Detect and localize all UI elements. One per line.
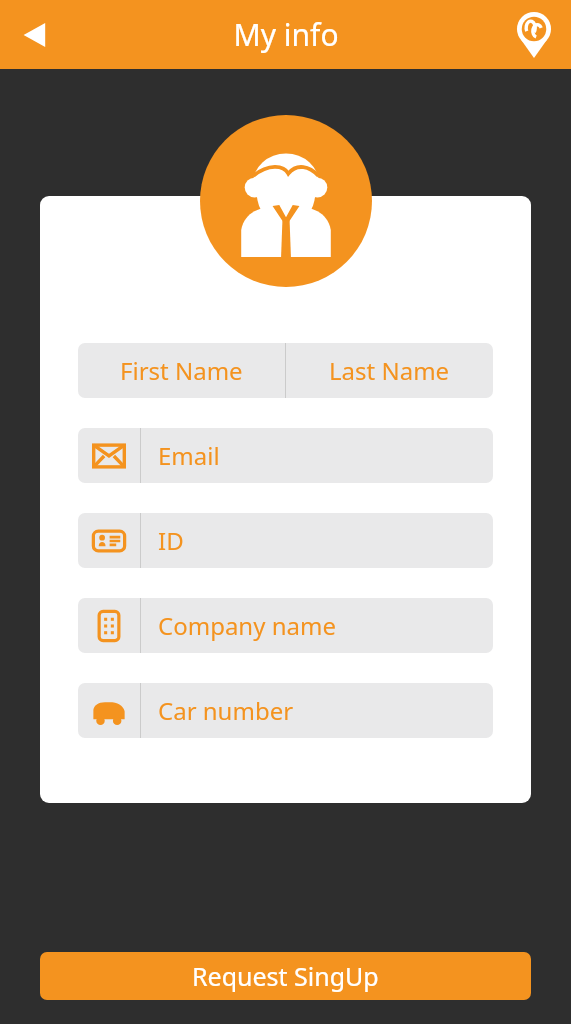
button[interactable]: Profile photo <box>200 115 372 287</box>
staticText: My info <box>233 14 339 55</box>
button[interactable]: Location <box>505 6 563 64</box>
staticText: Request SingUp <box>192 959 379 993</box>
button[interactable]: Car number <box>78 683 493 738</box>
button[interactable]: Company name <box>78 598 493 653</box>
staticText: Email <box>158 439 220 472</box>
staticText: Last Name <box>329 354 450 387</box>
staticText: First Name <box>120 354 243 387</box>
staticText: Company name <box>158 609 336 642</box>
staticText: ID <box>158 524 184 557</box>
button[interactable]: Email <box>78 428 493 483</box>
button[interactable]: Back <box>6 6 64 64</box>
button[interactable]: Last Name <box>285 343 493 398</box>
staticText: Car number <box>158 694 294 727</box>
button[interactable]: Request SingUp <box>40 952 531 1000</box>
button[interactable]: ID <box>78 513 493 568</box>
button[interactable]: First Name <box>78 343 285 398</box>
